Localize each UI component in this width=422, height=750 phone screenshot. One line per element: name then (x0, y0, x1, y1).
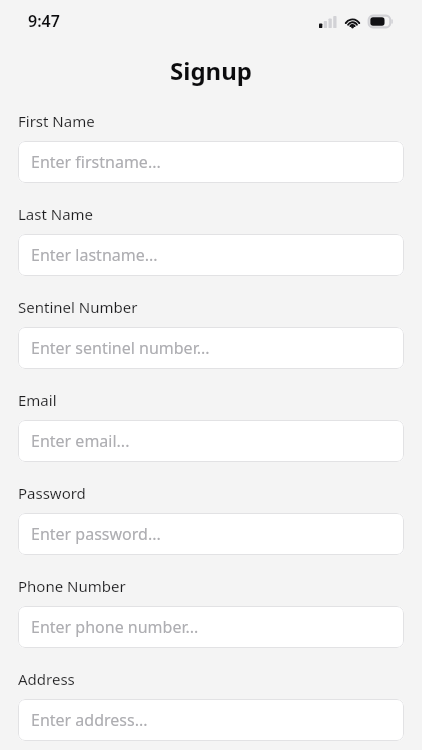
staticText: Last Name (18, 204, 94, 224)
staticText: First Name (18, 111, 95, 131)
staticText: 9:47 (28, 10, 60, 32)
staticText: Phone Number (18, 576, 126, 596)
button[interactable]: Enter email... (18, 420, 404, 462)
staticText: Enter password... (31, 523, 161, 545)
other: Wi-Fi (344, 16, 361, 28)
button[interactable]: Enter sentinel number... (18, 327, 404, 369)
button[interactable]: Enter phone number... (18, 606, 404, 648)
staticText: Enter lastname... (31, 244, 158, 266)
staticText: Enter email... (31, 430, 130, 452)
button[interactable]: Enter lastname... (18, 234, 404, 276)
button[interactable]: Enter address... (18, 699, 404, 741)
staticText: Enter sentinel number... (31, 337, 210, 359)
staticText: Address (18, 669, 75, 689)
button[interactable]: Enter password... (18, 513, 404, 555)
staticText: Signup (170, 54, 252, 87)
staticText: Enter phone number... (31, 616, 199, 638)
other: Battery (368, 15, 394, 28)
other: Cellular signal (319, 16, 337, 28)
staticText: Enter address... (31, 709, 148, 731)
staticText: Sentinel Number (18, 297, 138, 317)
staticText: Email (18, 390, 57, 410)
staticText: Password (18, 483, 86, 503)
staticText: Enter firstname... (31, 151, 161, 173)
button[interactable]: Enter firstname... (18, 141, 404, 183)
